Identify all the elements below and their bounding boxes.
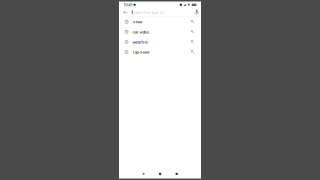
staticText: cat video (133, 29, 149, 34)
staticText: weather (133, 39, 149, 45)
button[interactable]: Home (155, 169, 165, 179)
staticText: search or type url (133, 9, 164, 15)
button[interactable]: Back (119, 8, 132, 16)
button[interactable]: Recent apps (172, 169, 182, 179)
button[interactable]: Back (138, 168, 149, 179)
button[interactable]: Voice search (193, 8, 200, 16)
button[interactable]: weather (119, 37, 201, 47)
staticText: top news (133, 49, 150, 55)
button[interactable]: cat video (119, 27, 201, 37)
button[interactable]: news (119, 17, 201, 27)
button[interactable]: top news (119, 47, 201, 57)
staticText: 10:49 (123, 2, 132, 7)
staticText: news (133, 19, 143, 24)
